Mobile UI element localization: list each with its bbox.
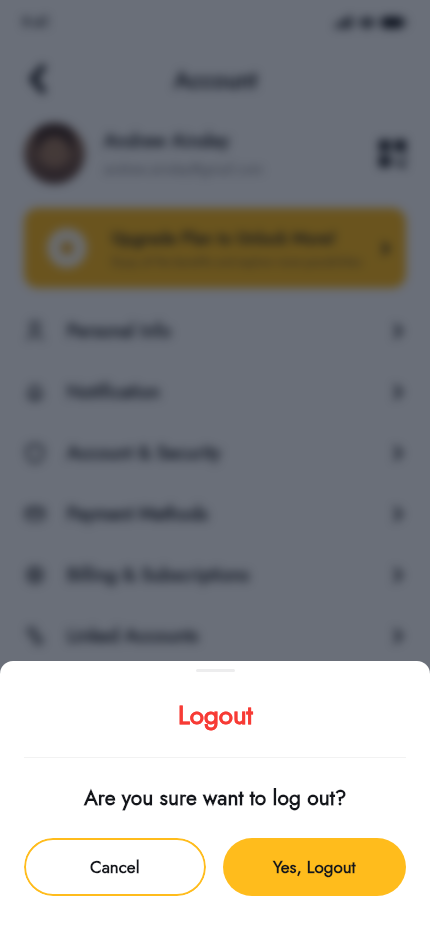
button[interactable]: Notification bbox=[0, 361, 430, 422]
button[interactable]: Payment Methods bbox=[0, 483, 430, 544]
staticText: Payment Methods bbox=[67, 500, 390, 527]
staticText: Logout bbox=[178, 696, 253, 734]
staticText: Upgrade Plan to Unlock More! bbox=[112, 225, 336, 250]
staticText: andrew.ainsley@gmail.com bbox=[104, 159, 264, 179]
button[interactable]: Scan QR code bbox=[379, 140, 406, 167]
staticText: Logout bbox=[178, 696, 253, 734]
staticText: 9:41 bbox=[22, 12, 49, 32]
button[interactable]: Linked Accounts bbox=[0, 605, 430, 666]
staticText: Personal Info bbox=[67, 317, 390, 344]
staticText: Yes, Logout bbox=[273, 855, 356, 880]
staticText: Linked Accounts bbox=[67, 622, 390, 649]
staticText: Cancel bbox=[90, 855, 140, 880]
staticText: Account bbox=[174, 62, 257, 97]
staticText: Billing & Subscriptions bbox=[67, 561, 390, 588]
staticText: Andrew Ainsley bbox=[104, 127, 230, 154]
button[interactable]: Yes, Logout bbox=[223, 838, 406, 896]
button[interactable]: Account & Security bbox=[0, 422, 430, 483]
staticText: Notification bbox=[67, 378, 390, 405]
staticText: Account & Security bbox=[67, 439, 390, 466]
button[interactable]: Billing & Subscriptions bbox=[0, 544, 430, 605]
button[interactable]: Cancel bbox=[24, 838, 206, 896]
button[interactable]: Personal Info bbox=[0, 300, 430, 361]
button[interactable]: Back bbox=[20, 61, 56, 97]
button[interactable]: Upgrade Plan to Unlock More! bbox=[24, 208, 406, 288]
staticText: Are you sure want to log out? bbox=[84, 783, 347, 813]
